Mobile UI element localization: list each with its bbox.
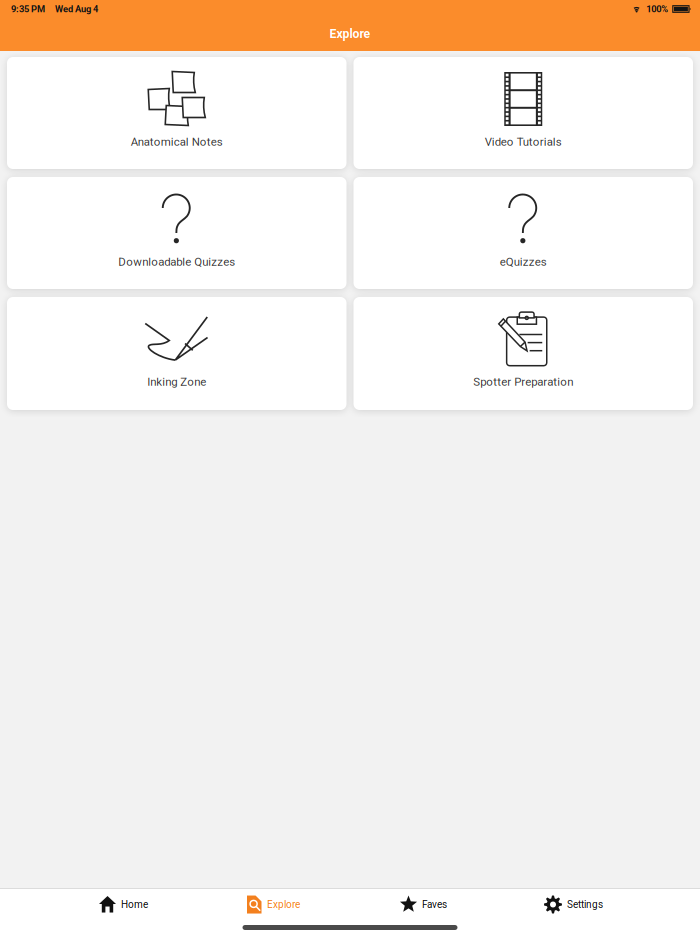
staticText: Wed Aug 4 xyxy=(55,3,98,14)
button[interactable]: Spotter Preparation xyxy=(353,297,693,410)
staticText: Explore xyxy=(329,27,370,41)
button[interactable]: eQuizzes xyxy=(353,177,693,289)
staticText: Downloadable Quizzes xyxy=(118,255,235,268)
staticText: 100% xyxy=(646,3,668,14)
button[interactable]: Home xyxy=(48,885,198,923)
button[interactable]: Anatomical Notes xyxy=(7,57,346,169)
button[interactable]: Explore xyxy=(198,885,348,923)
staticText: Explore xyxy=(267,899,300,910)
staticText: Settings xyxy=(567,899,603,910)
staticText: Home xyxy=(121,899,148,910)
staticText: Spotter Preparation xyxy=(473,375,573,388)
button[interactable]: Faves xyxy=(348,885,498,923)
staticText: Anatomical Notes xyxy=(131,135,223,148)
button[interactable]: Settings xyxy=(498,885,648,923)
staticText: Faves xyxy=(422,899,447,910)
button[interactable]: Downloadable Quizzes xyxy=(7,177,346,289)
staticText: Inking Zone xyxy=(147,375,206,388)
staticText: eQuizzes xyxy=(500,255,547,268)
button[interactable]: Video Tutorials xyxy=(353,57,693,169)
button[interactable]: Inking Zone xyxy=(7,297,346,410)
staticText: Video Tutorials xyxy=(485,135,562,148)
staticText: 9:35 PM xyxy=(11,3,45,14)
